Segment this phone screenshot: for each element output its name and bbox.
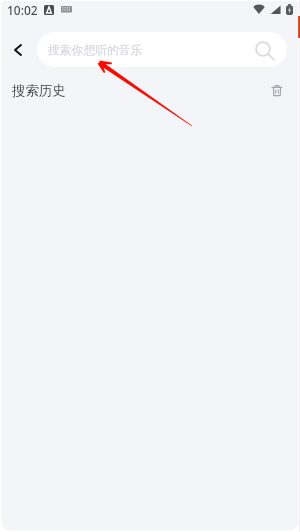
button[interactable]: Clear search history <box>267 80 287 100</box>
staticText: 搜索历史 <box>12 82 66 99</box>
staticText: 搜索你想听的音乐 <box>48 43 143 58</box>
button[interactable]: Back <box>0 32 35 67</box>
button[interactable]: 搜索你想听的音乐 <box>37 32 287 67</box>
staticText: 10:02 <box>7 2 38 18</box>
